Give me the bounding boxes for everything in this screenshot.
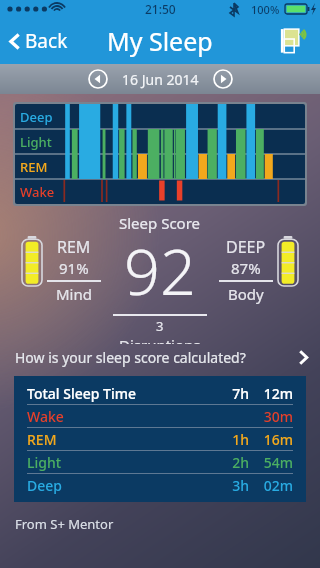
staticText: 100% bbox=[251, 2, 280, 17]
staticText: Mind bbox=[56, 284, 92, 304]
staticText: REM bbox=[20, 158, 48, 176]
staticText: My Sleep bbox=[107, 24, 213, 58]
staticText: 16m bbox=[259, 430, 293, 449]
staticText: 91% bbox=[59, 258, 89, 278]
staticText: 21:50 bbox=[145, 1, 176, 17]
staticText: 92 bbox=[124, 228, 196, 314]
staticText: 1h bbox=[223, 430, 249, 449]
staticText: Back bbox=[25, 28, 68, 54]
button[interactable]: Mentor bbox=[275, 22, 313, 60]
staticText: DEEP bbox=[226, 236, 266, 258]
staticText: 3 bbox=[156, 317, 164, 335]
staticText: Total Sleep Time bbox=[27, 384, 223, 403]
staticText: From S+ Mentor bbox=[15, 515, 114, 533]
staticText: Light bbox=[27, 453, 223, 472]
staticText: REM bbox=[27, 430, 223, 449]
staticText: 54m bbox=[259, 453, 293, 472]
staticText: Sleep Score bbox=[119, 213, 201, 233]
staticText: 30m bbox=[259, 407, 293, 426]
staticText: 2h bbox=[223, 453, 249, 472]
staticText: Deep bbox=[20, 108, 53, 126]
button[interactable]: How is your sleep score calculated? bbox=[0, 344, 320, 370]
staticText: 12m bbox=[259, 384, 293, 403]
staticText: 16 Jun 2014 bbox=[122, 70, 199, 89]
staticText: 02m bbox=[259, 476, 293, 495]
staticText: Body bbox=[228, 284, 264, 304]
button[interactable]: Previous day bbox=[85, 66, 111, 92]
staticText: Light bbox=[20, 133, 52, 151]
staticText: How is your sleep score calculated? bbox=[15, 348, 298, 367]
button[interactable]: Next day bbox=[210, 66, 236, 92]
button[interactable]: Back bbox=[0, 20, 78, 62]
staticText: 87% bbox=[231, 258, 261, 278]
staticText: Wake bbox=[27, 407, 223, 426]
staticText: Disruptions bbox=[119, 335, 201, 344]
staticText: Deep bbox=[27, 476, 223, 495]
staticText: Wake bbox=[20, 183, 55, 201]
staticText: 3h bbox=[223, 476, 249, 495]
staticText: REM bbox=[57, 236, 91, 258]
staticText: 7h bbox=[223, 384, 249, 403]
